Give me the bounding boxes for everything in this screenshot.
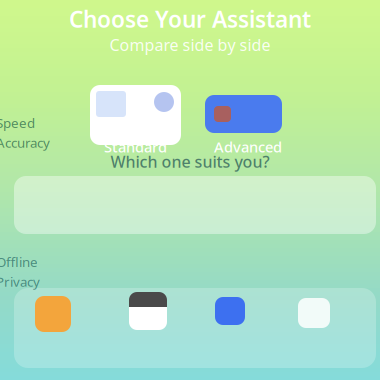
button[interactable]: Chat — [215, 297, 245, 325]
staticText: Compare side by side — [109, 34, 270, 55]
button[interactable]: Notes — [35, 296, 71, 332]
staticText: Advanced — [214, 137, 282, 156]
staticText: Which one suits you? — [110, 151, 269, 172]
staticText: Privacy — [0, 273, 40, 290]
staticText: Offline — [0, 253, 38, 271]
staticText: Standard — [104, 137, 167, 156]
button[interactable]: More — [298, 298, 330, 328]
button[interactable]: Advanced preview — [205, 95, 282, 133]
staticText: Speed — [0, 114, 35, 132]
staticText: Choose Your Assistant — [69, 4, 311, 34]
button[interactable]: Standard preview — [90, 85, 181, 145]
staticText: Accuracy — [0, 134, 50, 151]
button[interactable]: Reader — [129, 292, 167, 330]
